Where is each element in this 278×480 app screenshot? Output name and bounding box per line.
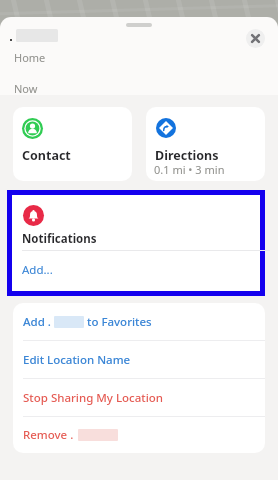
staticText: Edit Location Name (23, 352, 131, 368)
staticText: Directions (155, 147, 219, 164)
staticText: Add... (22, 262, 53, 278)
staticText: Stop Sharing My Location (23, 390, 164, 406)
staticText: Home (14, 50, 46, 65)
button[interactable]: Contact (13, 107, 132, 181)
button[interactable]: Add... (12, 251, 260, 291)
button[interactable]: Close (246, 29, 265, 48)
button[interactable]: Remove . (13, 417, 265, 453)
button[interactable]: Edit Location Name (13, 341, 265, 378)
button[interactable]: Directions (146, 107, 265, 181)
button[interactable]: Add . (13, 303, 265, 340)
staticText: to Favorites (84, 314, 152, 330)
staticText: Notifications (22, 231, 97, 247)
staticText: 0.1 mi • 3 min (154, 162, 225, 177)
staticText: Remove . (23, 427, 74, 443)
button[interactable]: Stop Sharing My Location (13, 379, 265, 416)
staticText: Now (14, 81, 38, 96)
staticText: Contact (22, 147, 71, 164)
staticText: Add . (23, 314, 51, 330)
